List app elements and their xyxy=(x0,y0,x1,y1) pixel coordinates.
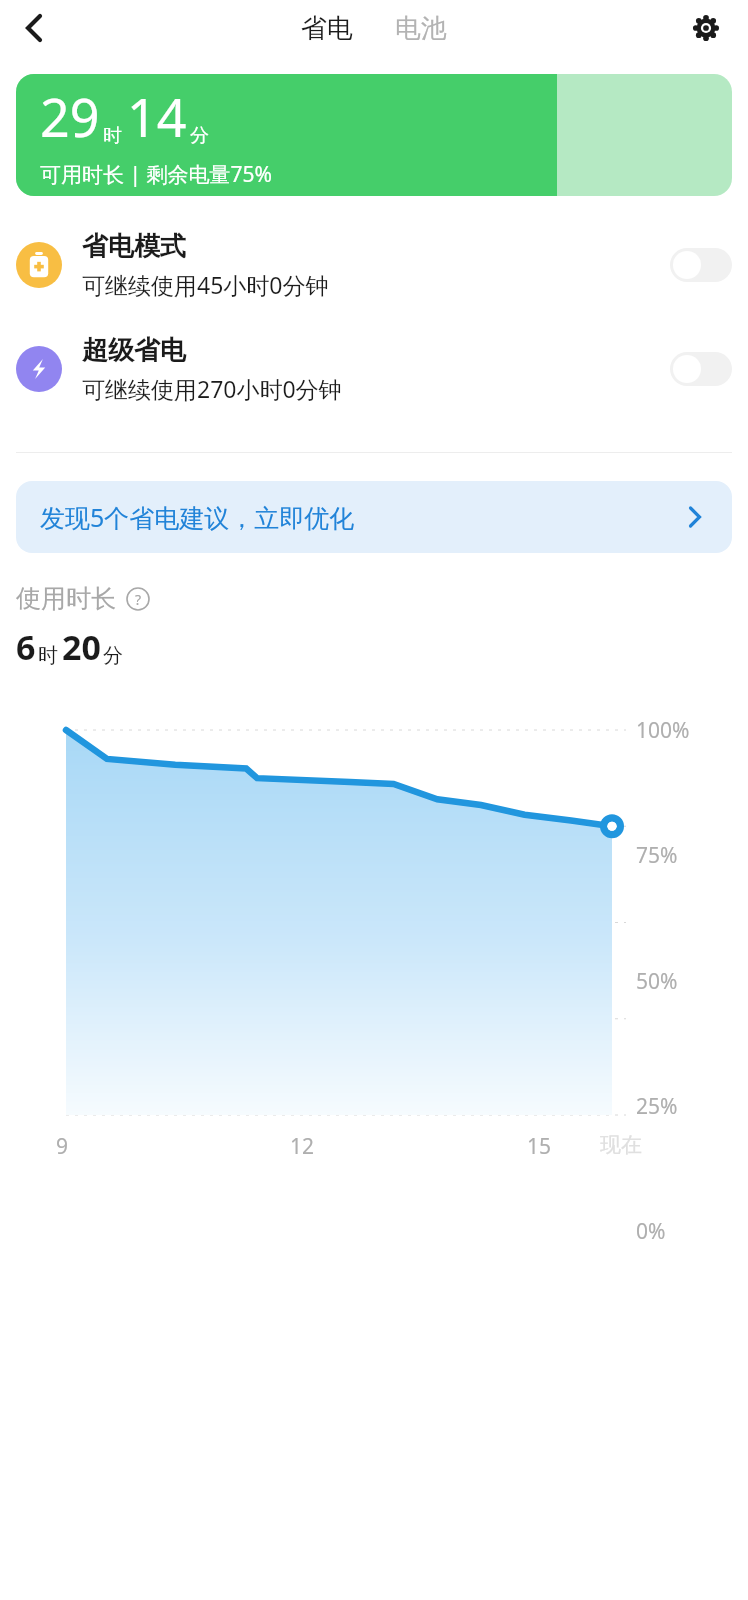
staticText: 可继续使用270小时0分钟 xyxy=(82,373,342,404)
staticText: 29 xyxy=(40,81,100,152)
staticText: 25% xyxy=(636,1092,678,1121)
staticText: 现在 xyxy=(600,1132,642,1158)
staticText: 时 xyxy=(103,124,122,148)
staticText: 75% xyxy=(636,841,678,870)
button[interactable]: Back xyxy=(8,2,60,54)
staticText: 省电模式 xyxy=(82,230,186,263)
staticText: 12 xyxy=(290,1132,315,1161)
staticText: 20 xyxy=(62,624,101,670)
staticText: 分 xyxy=(190,124,209,148)
staticText: 100% xyxy=(636,716,690,745)
staticText: 15 xyxy=(527,1132,552,1161)
button[interactable]: 省电模式 xyxy=(0,224,748,306)
button[interactable]: 29 xyxy=(16,74,732,196)
button[interactable]: 发现5个省电建议，立即优化 xyxy=(16,481,732,553)
button[interactable]: Settings xyxy=(680,2,732,54)
button[interactable]: 超级省电 xyxy=(0,328,748,410)
button[interactable]: 省电 xyxy=(293,8,361,49)
staticText: 发现5个省电建议，立即优化 xyxy=(40,500,682,534)
staticText: 省电 xyxy=(301,12,353,45)
staticText: 超级省电 xyxy=(82,334,186,367)
button[interactable]: Help xyxy=(126,587,150,611)
staticText: ? xyxy=(135,590,142,609)
button[interactable]: Toggle 超级省电 xyxy=(670,352,732,386)
staticText: 6 xyxy=(16,624,36,670)
staticText: 0% xyxy=(636,1217,666,1246)
staticText: 分 xyxy=(103,643,123,668)
staticText: 9 xyxy=(56,1132,69,1161)
staticText: 使用时长 xyxy=(16,583,116,614)
staticText: 电池 xyxy=(395,12,447,45)
staticText: 14 xyxy=(127,81,187,152)
staticText: 时 xyxy=(38,643,58,668)
staticText: 可继续使用45小时0分钟 xyxy=(82,269,329,300)
staticText: 50% xyxy=(636,967,678,996)
button[interactable]: 电池 xyxy=(387,8,455,49)
staticText: 可用时长 | 剩余电量75% xyxy=(40,160,272,189)
button[interactable]: Toggle 省电模式 xyxy=(670,248,732,282)
